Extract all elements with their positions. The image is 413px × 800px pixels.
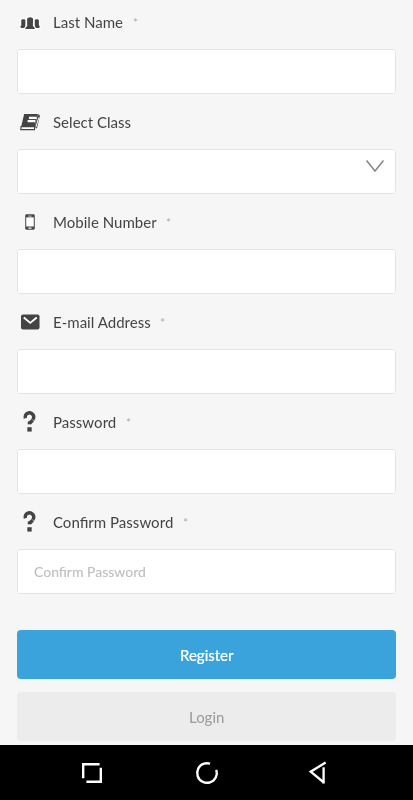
button[interactable]: Back bbox=[290, 745, 346, 800]
button[interactable] bbox=[17, 49, 396, 94]
staticText: Confirm Password bbox=[34, 563, 146, 580]
button[interactable]: Confirm Password bbox=[17, 549, 396, 594]
staticText: Login bbox=[189, 708, 225, 726]
staticText: E-mail Address bbox=[53, 313, 151, 331]
button[interactable]: Register bbox=[17, 630, 396, 679]
button[interactable] bbox=[17, 249, 396, 294]
button[interactable] bbox=[17, 349, 396, 394]
staticText: * bbox=[160, 315, 166, 329]
button[interactable]: Home bbox=[178, 745, 235, 800]
staticText: * bbox=[133, 15, 139, 29]
staticText: Select Class bbox=[53, 113, 132, 131]
staticText: Mobile Number bbox=[53, 213, 157, 231]
button[interactable]: Recent apps bbox=[64, 745, 120, 800]
staticText: Password bbox=[53, 413, 117, 431]
staticText: * bbox=[183, 515, 189, 529]
staticText: Confirm Password bbox=[53, 513, 174, 531]
staticText: * bbox=[166, 215, 172, 229]
staticText: Last Name bbox=[53, 13, 124, 31]
staticText: Register bbox=[180, 646, 234, 664]
staticText: * bbox=[126, 415, 132, 429]
button[interactable]: Login bbox=[17, 692, 396, 741]
button[interactable] bbox=[17, 449, 396, 494]
button[interactable] bbox=[17, 149, 396, 194]
